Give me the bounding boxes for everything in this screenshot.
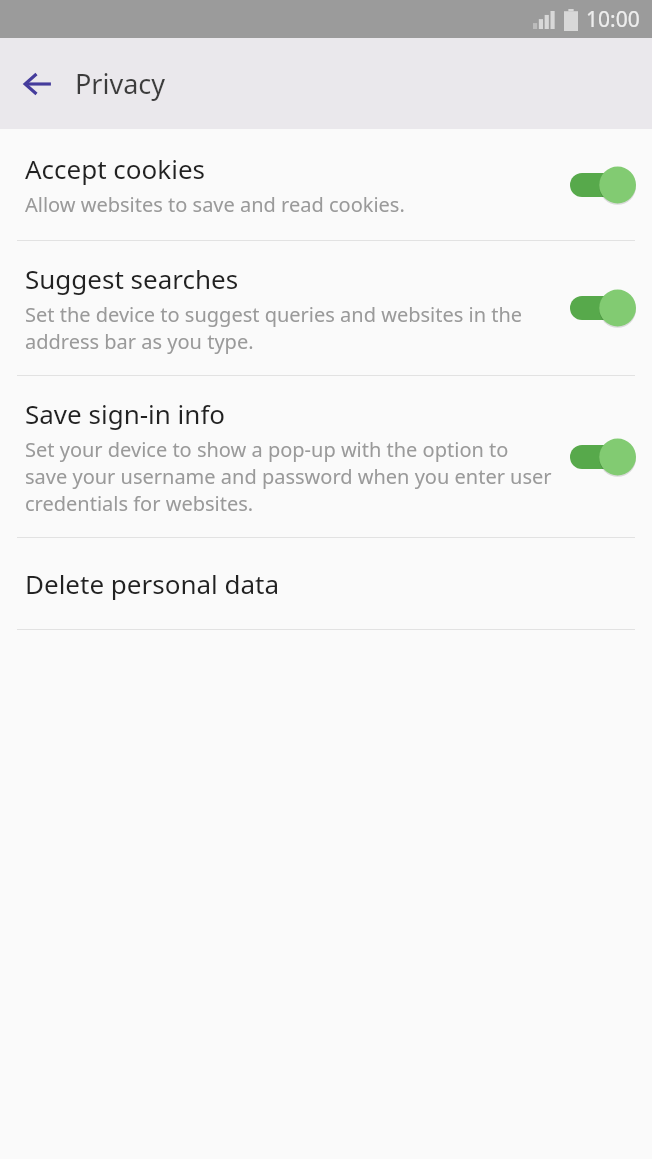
button[interactable]: Toggle [570, 437, 636, 477]
button[interactable]: Save sign-in info [0, 376, 652, 537]
staticText: Accept cookies [25, 151, 206, 186]
staticText: Privacy [75, 65, 166, 102]
staticText: Set the device to suggest queries and we… [25, 301, 552, 355]
staticText: Allow websites to save and read cookies. [25, 191, 405, 218]
button[interactable]: Toggle [570, 165, 636, 205]
button[interactable]: Suggest searches [0, 241, 652, 375]
button[interactable]: Toggle [570, 288, 636, 328]
button[interactable]: Accept cookies [0, 129, 652, 240]
staticText: Suggest searches [25, 261, 239, 296]
staticText: Set your device to show a pop-up with th… [25, 436, 552, 517]
staticText: Save sign-in info [25, 396, 226, 431]
button[interactable]: Delete personal data [0, 538, 652, 629]
staticText: 10:00 [586, 5, 640, 34]
staticText: Delete personal data [25, 566, 280, 601]
button[interactable]: Back [14, 60, 62, 108]
